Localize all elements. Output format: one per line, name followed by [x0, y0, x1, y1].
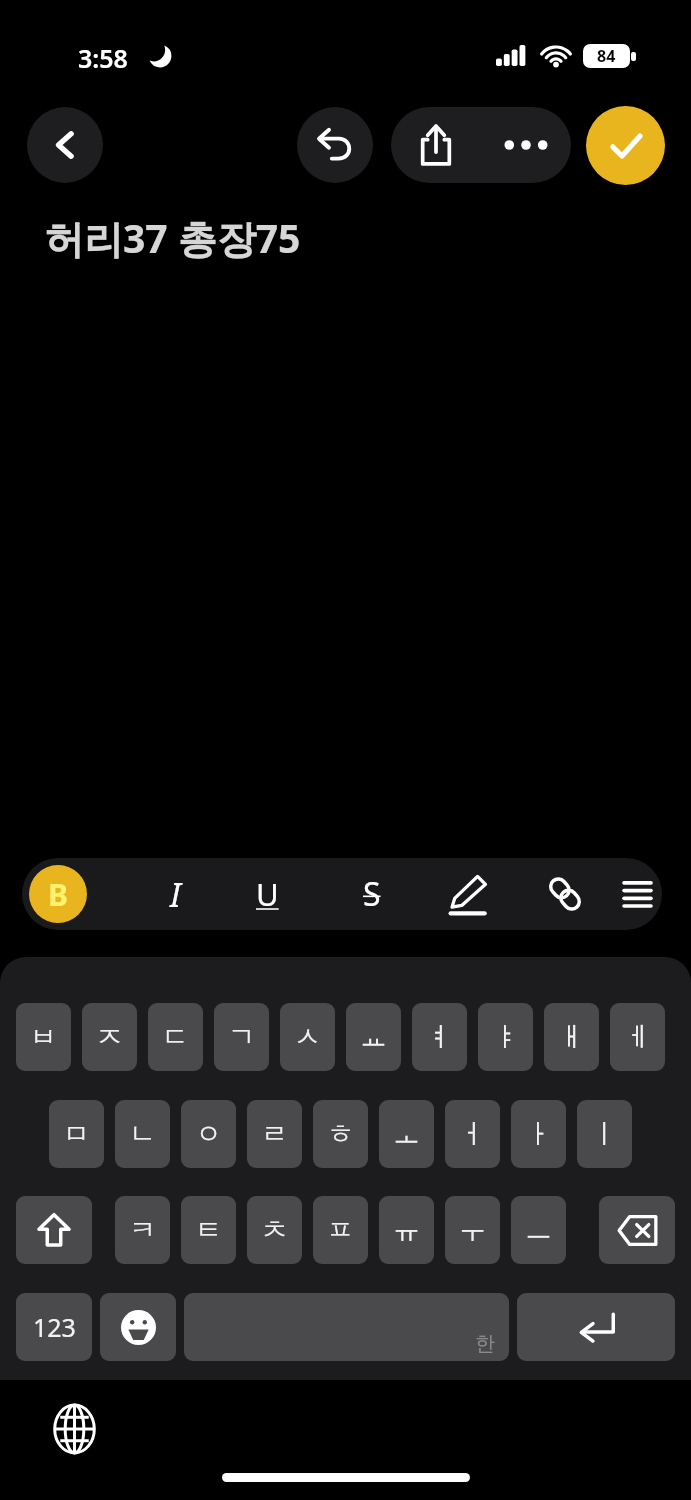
button[interactable]: ㄷ [148, 1003, 203, 1071]
staticText: ㄱ [228, 1020, 255, 1054]
staticText: ㅓ [459, 1117, 486, 1151]
button[interactable]: Share [391, 107, 481, 183]
staticText: ㄴ [129, 1117, 156, 1151]
button[interactable]: Backspace [599, 1196, 675, 1264]
button[interactable]: Change keyboard [46, 1401, 102, 1457]
button[interactable]: Back [27, 107, 103, 183]
button[interactable]: ㅊ [247, 1196, 302, 1264]
button[interactable]: Shift [16, 1196, 92, 1264]
staticText: ㅈ [96, 1020, 123, 1054]
staticText: ㅕ [426, 1020, 453, 1054]
button[interactable]: ㅓ [445, 1100, 500, 1168]
button[interactable]: More options [481, 107, 571, 183]
button[interactable]: ㅏ [511, 1100, 566, 1168]
staticText: ㅗ [393, 1117, 420, 1151]
staticText: ㄹ [261, 1117, 288, 1151]
button[interactable]: Undo [297, 107, 373, 183]
staticText: ㅠ [393, 1213, 420, 1247]
staticText: ㅎ [327, 1117, 354, 1151]
staticText: U [256, 873, 279, 915]
button[interactable]: Highlight [422, 858, 512, 930]
button[interactable]: ㅗ [379, 1100, 434, 1168]
button[interactable]: Bold [29, 865, 87, 923]
staticText: ㅍ [327, 1213, 354, 1247]
button[interactable]: ㅇ [181, 1100, 236, 1168]
button[interactable]: ㅠ [379, 1196, 434, 1264]
button[interactable]: Emoji [100, 1293, 176, 1361]
button[interactable]: Space [184, 1293, 509, 1361]
staticText: ㅑ [492, 1020, 519, 1054]
button[interactable]: ㅜ [445, 1196, 500, 1264]
staticText: B [48, 874, 68, 915]
staticText: S [363, 872, 381, 916]
button[interactable]: ㅕ [412, 1003, 467, 1071]
staticText: ㅛ [360, 1020, 387, 1054]
button[interactable]: Enter [517, 1293, 675, 1361]
button[interactable]: ㄹ [247, 1100, 302, 1168]
staticText: ㅌ [195, 1213, 222, 1247]
button[interactable]: ㅡ [511, 1196, 566, 1264]
staticText: ㅁ [63, 1117, 90, 1151]
staticText: 3:58 [78, 41, 128, 75]
button[interactable]: Link [520, 858, 610, 930]
button[interactable]: ㅍ [313, 1196, 368, 1264]
button[interactable]: ㄱ [214, 1003, 269, 1071]
button[interactable]: ㅛ [346, 1003, 401, 1071]
staticText: ㅜ [459, 1213, 486, 1247]
button[interactable]: ㅌ [181, 1196, 236, 1264]
button[interactable]: ㅋ [115, 1196, 170, 1264]
button[interactable]: ㅁ [49, 1100, 104, 1168]
staticText: ㅡ [525, 1213, 552, 1247]
staticText: ㅅ [294, 1020, 321, 1054]
staticText: 84 [597, 45, 616, 67]
staticText: 허리37 총장75 [45, 211, 301, 264]
button[interactable]: ㅣ [577, 1100, 632, 1168]
button[interactable]: Numbers [16, 1293, 92, 1361]
staticText: ㅔ [624, 1020, 651, 1054]
staticText: ㅏ [525, 1117, 552, 1151]
button[interactable]: Underline [222, 858, 312, 930]
button[interactable]: Italic [130, 858, 220, 930]
staticText: ㅣ [591, 1117, 618, 1151]
staticText: 한 [475, 1331, 495, 1356]
button[interactable]: ㅂ [16, 1003, 71, 1071]
staticText: ㅊ [261, 1213, 288, 1247]
staticText: ㄷ [162, 1020, 189, 1054]
button[interactable]: ㄴ [115, 1100, 170, 1168]
staticText: 123 [33, 1310, 76, 1344]
button[interactable]: ㅐ [544, 1003, 599, 1071]
button[interactable]: Done [586, 106, 665, 185]
staticText: ㅋ [129, 1213, 156, 1247]
button[interactable]: Strikethrough [327, 858, 417, 930]
button[interactable]: ㅈ [82, 1003, 137, 1071]
staticText: I [170, 872, 181, 917]
button[interactable]: List [612, 858, 662, 930]
button[interactable]: ㅑ [478, 1003, 533, 1071]
staticText: ㅐ [558, 1020, 585, 1054]
staticText: ㅂ [30, 1020, 57, 1054]
button[interactable]: ㅎ [313, 1100, 368, 1168]
button[interactable]: ㅔ [610, 1003, 665, 1071]
staticText: ㅇ [195, 1117, 222, 1151]
button[interactable]: ㅅ [280, 1003, 335, 1071]
